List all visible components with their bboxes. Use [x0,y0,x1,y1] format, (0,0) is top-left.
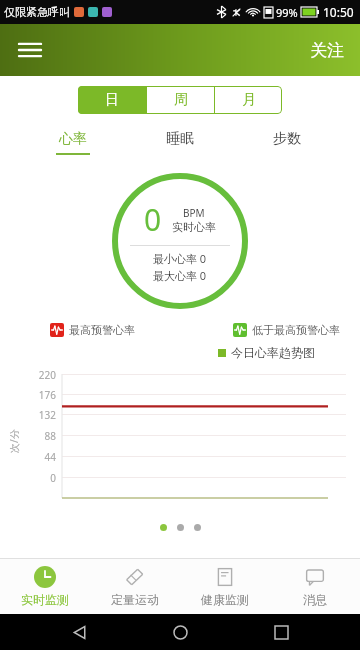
staticText: 低于最高预警心率 [252,323,340,337]
button[interactable]: 心率 [46,126,100,159]
staticText: 最高预警心率 [69,323,135,337]
staticText: 次/分 [7,429,21,453]
staticText: 最大心率 0 [153,268,207,283]
staticText: 88 [44,429,56,443]
button[interactable]: Home [158,614,202,650]
button[interactable]: 定量运动 [90,559,180,614]
button[interactable]: 睡眠 [153,126,207,159]
staticText: 实时监测 [21,592,69,607]
staticText: 周 [174,91,188,109]
staticText: 日 [105,91,119,109]
staticText: 消息 [303,592,327,607]
staticText: 定量运动 [111,592,159,607]
staticText: 0 [50,471,56,485]
button[interactable]: 关注 [302,32,352,69]
button[interactable]: 实时监测 [0,559,90,614]
staticText: 10:50 [323,4,354,20]
staticText: 今日心率趋势图 [231,345,315,360]
staticText: 睡眠 [166,130,194,148]
staticText: 健康监测 [201,592,249,607]
button[interactable]: 消息 [270,559,360,614]
staticText: 0 [144,199,162,240]
button[interactable]: 健康监测 [180,559,270,614]
button[interactable]: Menu [8,28,52,72]
staticText: 步数 [273,130,301,148]
staticText: 心率 [59,130,87,148]
button[interactable]: 步数 [260,126,314,159]
staticText: 实时心率 [172,220,216,234]
staticText: 176 [38,388,56,402]
button[interactable]: Recents [259,614,303,650]
staticText: 99% [276,5,298,20]
button[interactable]: Back [57,614,101,650]
button[interactable]: 月 [215,86,282,114]
staticText: 最小心率 0 [153,251,207,266]
button[interactable]: 日 [78,86,146,114]
staticText: 132 [38,408,56,422]
staticText: BPM [183,206,205,220]
staticText: 关注 [310,40,344,61]
staticText: 月 [242,91,256,109]
staticText: 220 [38,368,56,382]
button[interactable]: 周 [147,86,214,114]
staticText: 仅限紧急呼叫 [4,5,70,19]
staticText: 44 [44,450,56,464]
